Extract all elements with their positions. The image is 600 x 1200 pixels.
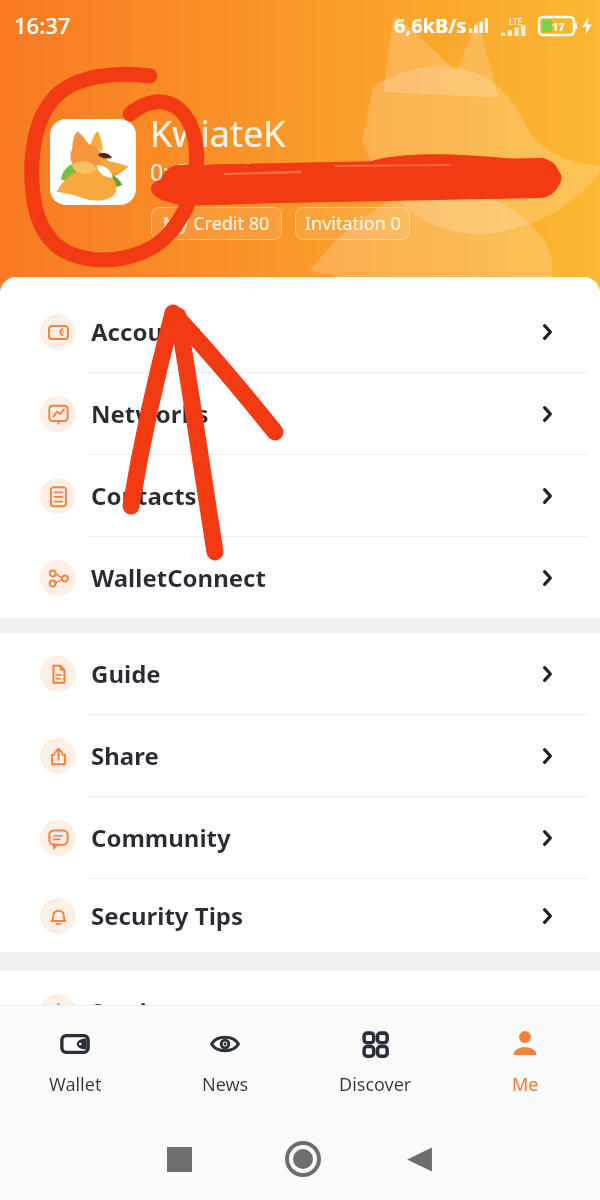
staticText: Accounts <box>91 315 202 348</box>
staticText: LTE <box>509 16 522 27</box>
button[interactable]: Me <box>450 1006 600 1118</box>
staticText: Settings <box>91 995 190 1028</box>
other: Home <box>285 1141 321 1177</box>
staticText: My Credit 80 <box>163 211 270 236</box>
button[interactable]: Wallet <box>0 1006 150 1118</box>
button[interactable]: Discover <box>300 1006 450 1118</box>
button[interactable]: Settings <box>0 971 600 1052</box>
staticText: Me <box>512 1072 539 1097</box>
staticText: Security Tips <box>91 899 244 932</box>
button[interactable]: Share <box>0 715 600 797</box>
button[interactable]: WalletConnect <box>0 537 600 618</box>
button[interactable]: Invitation 0 <box>295 207 410 240</box>
staticText: Networks <box>91 397 209 430</box>
staticText: Community <box>91 821 231 854</box>
staticText: 0x8c3…Bb7A <box>150 156 288 187</box>
button[interactable]: My Credit 80 <box>151 207 282 240</box>
staticText: 17 <box>552 19 565 34</box>
staticText: WalletConnect <box>91 561 266 594</box>
button[interactable]: Profile avatar <box>50 119 136 205</box>
staticText: Contacts <box>91 479 197 512</box>
staticText: Share <box>91 739 159 772</box>
button[interactable]: News <box>150 1006 300 1118</box>
button[interactable]: Guide <box>0 633 600 715</box>
button[interactable]: Contacts <box>0 455 600 537</box>
staticText: 16:37 <box>14 10 71 40</box>
staticText: Guide <box>91 657 161 690</box>
button[interactable]: Accounts <box>0 291 600 373</box>
staticText: 6,6kB/s <box>394 12 467 39</box>
staticText: News <box>202 1072 249 1097</box>
button[interactable]: Community <box>0 797 600 879</box>
staticText: Wallet <box>49 1072 102 1097</box>
button[interactable]: Networks <box>0 373 600 455</box>
staticText: Invitation 0 <box>305 211 401 236</box>
staticText: Discover <box>339 1072 412 1097</box>
staticText: KwiateK <box>150 109 286 158</box>
other: Back <box>406 1146 433 1173</box>
button[interactable]: Security Tips <box>0 879 600 952</box>
